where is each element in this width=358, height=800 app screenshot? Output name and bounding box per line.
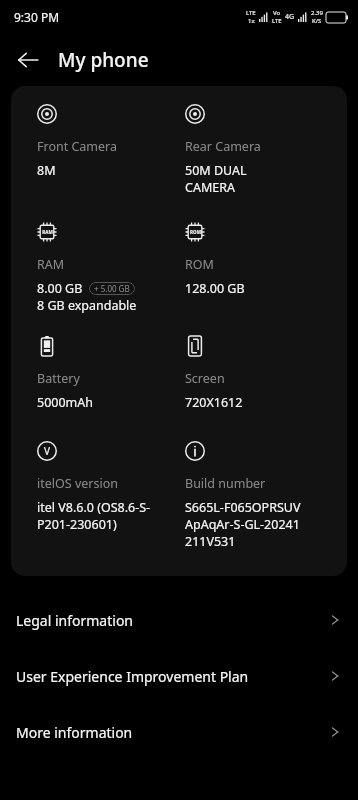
- staticText: LTE: [246, 9, 256, 17]
- staticText: 1x: [248, 17, 255, 25]
- button[interactable]: More information: [0, 704, 358, 760]
- staticText: Battery: [37, 370, 80, 387]
- staticText: 4G: [285, 12, 295, 22]
- staticText: 8M: [37, 162, 56, 179]
- staticText: itelOS version: [37, 475, 118, 492]
- staticText: RAM: [42, 229, 53, 235]
- button[interactable]: Back: [6, 38, 50, 82]
- staticText: 9:30 PM: [14, 9, 60, 25]
- staticText: itel V8.6.0 (OS8.6-S- P201-230601): [37, 499, 151, 533]
- staticText: 50M DUAL CAMERA: [185, 162, 247, 196]
- staticText: My phone: [58, 47, 149, 73]
- staticText: 8 GB expandable: [37, 297, 137, 314]
- staticText: S665L-F065OPRSUV ApAqAr-S-GL-20241 211V5…: [185, 499, 301, 550]
- staticText: 5000mAh: [37, 394, 94, 411]
- staticText: Build number: [185, 475, 266, 492]
- staticText: More information: [16, 723, 133, 742]
- staticText: + 5.00 GB: [94, 283, 130, 294]
- staticText: V: [44, 444, 50, 458]
- staticText: ROM: [185, 256, 214, 273]
- staticText: K/S: [312, 17, 322, 25]
- staticText: 128.00 GB: [185, 280, 245, 297]
- staticText: ROM: [190, 229, 201, 235]
- staticText: 720X1612: [185, 394, 243, 411]
- staticText: Rear Camera: [185, 138, 261, 155]
- button[interactable]: User Experience Improvement Plan: [0, 648, 358, 704]
- staticText: Legal information: [16, 611, 134, 630]
- staticText: RAM: [37, 256, 65, 273]
- staticText: 2.39: [311, 9, 323, 17]
- staticText: Vo: [273, 9, 281, 17]
- staticText: User Experience Improvement Plan: [16, 667, 249, 686]
- button[interactable]: Legal information: [0, 592, 358, 648]
- staticText: LTE: [272, 17, 282, 25]
- staticText: 8.00 GB: [37, 280, 83, 297]
- staticText: Screen: [185, 370, 225, 387]
- staticText: Front Camera: [37, 138, 118, 155]
